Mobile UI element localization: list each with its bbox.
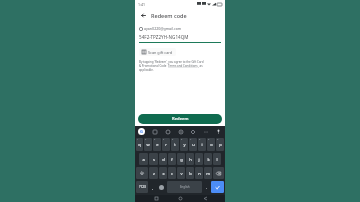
staticText: v — [180, 171, 183, 176]
button[interactable]: s — [149, 153, 158, 165]
staticText: 8 — [199, 138, 201, 141]
staticText: Scan gift card — [148, 50, 173, 55]
button[interactable]: Change language — [157, 181, 166, 193]
staticText: 3 — [154, 138, 156, 141]
button[interactable]: k — [204, 153, 212, 165]
button[interactable]: n — [195, 167, 203, 179]
staticText: j — [198, 157, 200, 162]
staticText: G — [140, 129, 143, 134]
button[interactable]: p — [216, 138, 224, 151]
button[interactable]: l — [213, 153, 221, 165]
button[interactable]: t — [171, 138, 179, 151]
button[interactable]: Enter — [211, 181, 224, 193]
staticText: ayan0220@gmail.com — [144, 26, 182, 31]
staticText: 2 — [145, 138, 147, 141]
button[interactable]: Home — [176, 195, 184, 202]
button[interactable]: . — [203, 181, 210, 193]
staticText: Redeem code — [151, 12, 187, 19]
staticText: 54F2-TPZ2YH-NG14QM — [139, 34, 189, 40]
staticText: z — [153, 171, 155, 176]
staticText: s — [153, 157, 155, 162]
staticText: r — [165, 142, 167, 147]
button[interactable]: Back — [138, 10, 148, 20]
staticText: w — [146, 142, 150, 147]
staticText: l — [216, 157, 218, 162]
staticText: 4 — [163, 138, 165, 141]
button[interactable]: Voice input — [215, 128, 222, 135]
button[interactable]: Stickers — [177, 128, 184, 135]
staticText: n — [198, 171, 201, 176]
button[interactable]: y — [180, 138, 188, 151]
button[interactable]: d — [159, 153, 167, 165]
staticText: e — [156, 142, 159, 147]
staticText: t — [174, 142, 176, 147]
button[interactable]: Back — [201, 195, 209, 202]
button[interactable]: Redeem — [138, 114, 222, 124]
staticText: x — [162, 171, 165, 176]
staticText: m — [206, 171, 210, 176]
button[interactable]: Scan gift card — [139, 48, 176, 56]
button[interactable]: c — [168, 167, 176, 179]
button[interactable]: r — [162, 138, 170, 151]
button[interactable]: Clipboard — [189, 128, 196, 135]
staticText: 6 — [181, 138, 183, 141]
button[interactable]: h — [186, 153, 194, 165]
button[interactable]: 54F2-TPZ2YH-NG14QM — [139, 34, 221, 43]
staticText: o — [210, 142, 213, 147]
staticText: c — [171, 171, 173, 176]
staticText: 0 — [217, 138, 219, 141]
button[interactable]: Space — [167, 181, 202, 193]
staticText: u — [192, 142, 195, 147]
staticText: a — [142, 157, 145, 162]
button[interactable]: Backspace — [213, 167, 224, 179]
button[interactable]: w — [144, 138, 152, 151]
button[interactable]: z — [149, 167, 158, 179]
staticText: By tapping 'Redeem', you agree to the Gi… — [139, 60, 204, 64]
button[interactable]: ?123 — [136, 181, 148, 193]
button[interactable]: g — [177, 153, 185, 165]
staticText: 9 — [208, 138, 210, 141]
button[interactable]: x — [159, 167, 167, 179]
button[interactable]: More — [202, 128, 209, 135]
button[interactable]: e — [153, 138, 161, 151]
staticText: b — [189, 171, 192, 176]
staticText: English — [180, 185, 190, 189]
staticText: , — [152, 185, 154, 190]
staticText: ?123 — [139, 185, 146, 189]
staticText: g — [180, 157, 183, 162]
staticText: y — [183, 142, 186, 147]
staticText: 1 — [137, 138, 139, 141]
button[interactable]: o — [207, 138, 215, 151]
staticText: . — [206, 185, 208, 190]
button[interactable]: f — [168, 153, 176, 165]
button[interactable]: Recents — [152, 195, 160, 202]
button[interactable]: a — [139, 153, 148, 165]
staticText: applicable. — [139, 68, 154, 72]
button[interactable]: Terms and Conditions — [168, 64, 198, 68]
button[interactable]: GIF — [164, 128, 171, 135]
button[interactable]: Themes — [151, 128, 158, 135]
button[interactable]: Google — [138, 128, 145, 135]
staticText: k — [207, 157, 210, 162]
staticText: 1:41 — [138, 2, 145, 7]
staticText: 7 — [190, 138, 192, 141]
button[interactable]: v — [177, 167, 185, 179]
button[interactable]: , — [149, 181, 156, 193]
button[interactable]: u — [189, 138, 197, 151]
staticText: q — [138, 142, 141, 147]
button[interactable]: j — [195, 153, 203, 165]
staticText: f — [171, 157, 173, 162]
button[interactable]: q — [136, 138, 143, 151]
button[interactable]: Shift — [136, 167, 148, 179]
staticText: 5 — [172, 138, 174, 141]
staticText: & Promotional Code — [139, 64, 168, 68]
staticText: d — [162, 157, 165, 162]
staticText: p — [219, 142, 222, 147]
button[interactable]: b — [186, 167, 194, 179]
button[interactable]: i — [198, 138, 206, 151]
staticText: i — [201, 142, 203, 147]
button[interactable]: m — [204, 167, 212, 179]
staticText: h — [189, 157, 192, 162]
staticText: Redeem — [172, 116, 189, 122]
staticText: , as — [198, 64, 203, 68]
